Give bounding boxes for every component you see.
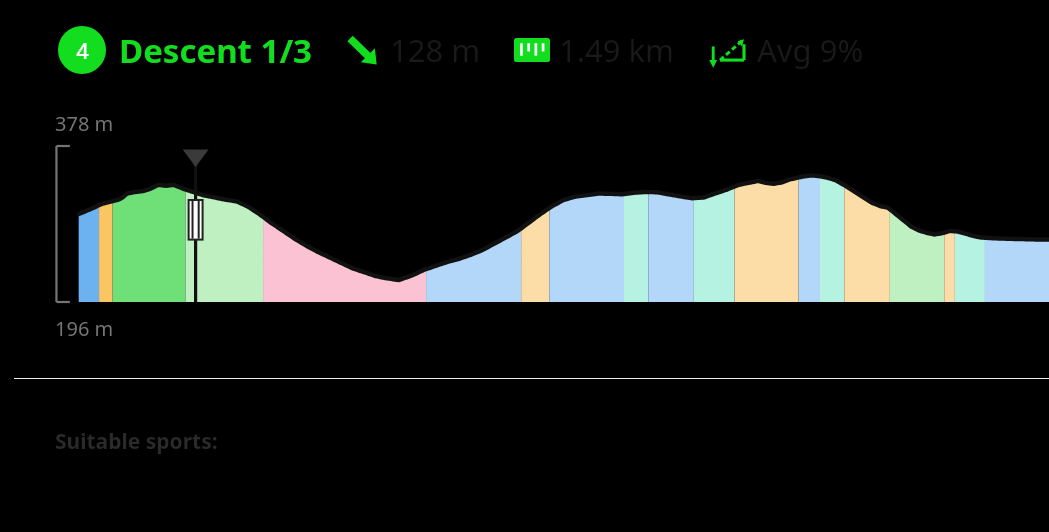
other: Descent — [345, 32, 381, 68]
staticText: 378 m — [55, 110, 114, 137]
staticText: 4 — [76, 35, 89, 65]
staticText: 128 m — [390, 29, 481, 71]
staticText: 1.49 km — [559, 29, 675, 71]
staticText: Suitable sports: — [55, 427, 218, 456]
button[interactable]: 4 — [58, 26, 106, 74]
other: Distance — [514, 38, 550, 62]
staticText: Avg 9% — [757, 29, 864, 71]
staticText: 196 m — [55, 315, 114, 342]
other: Average gradient — [708, 32, 748, 68]
staticText: Descent 1/3 — [119, 28, 312, 73]
